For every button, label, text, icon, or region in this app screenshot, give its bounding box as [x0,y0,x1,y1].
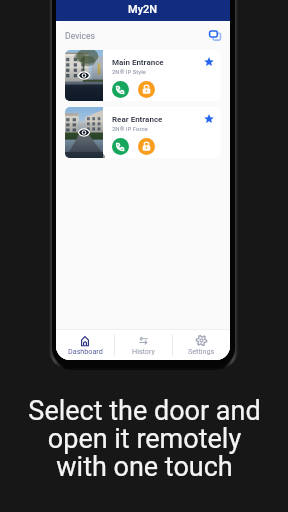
button[interactable]: Call [112,138,129,155]
staticText: Devices [65,31,95,41]
button[interactable]: Unlock door [138,81,155,98]
staticText: 2N® IP Style [112,68,146,75]
staticText: Select the door and open it remotely wit… [28,395,261,483]
button[interactable]: Settings [173,330,230,360]
button[interactable]: Main Entrance [65,50,221,101]
staticText: Rear Entrance [112,115,163,124]
staticText: 2N® IP Force [112,125,148,132]
button[interactable]: Favourite [204,57,214,67]
staticText: History [132,347,155,355]
button[interactable]: Manage devices [209,30,221,41]
staticText: Settings [188,347,215,355]
button[interactable]: History [115,330,172,360]
button[interactable]: Call [112,81,129,98]
staticText: My2N [128,3,158,16]
staticText: Main Entrance [112,58,164,67]
staticText: Dashboard [68,347,103,355]
button[interactable]: Unlock door [138,138,155,155]
button[interactable]: Dashboard [56,330,114,360]
button[interactable]: Favourite [204,114,214,124]
button[interactable]: Rear Entrance [65,107,221,158]
